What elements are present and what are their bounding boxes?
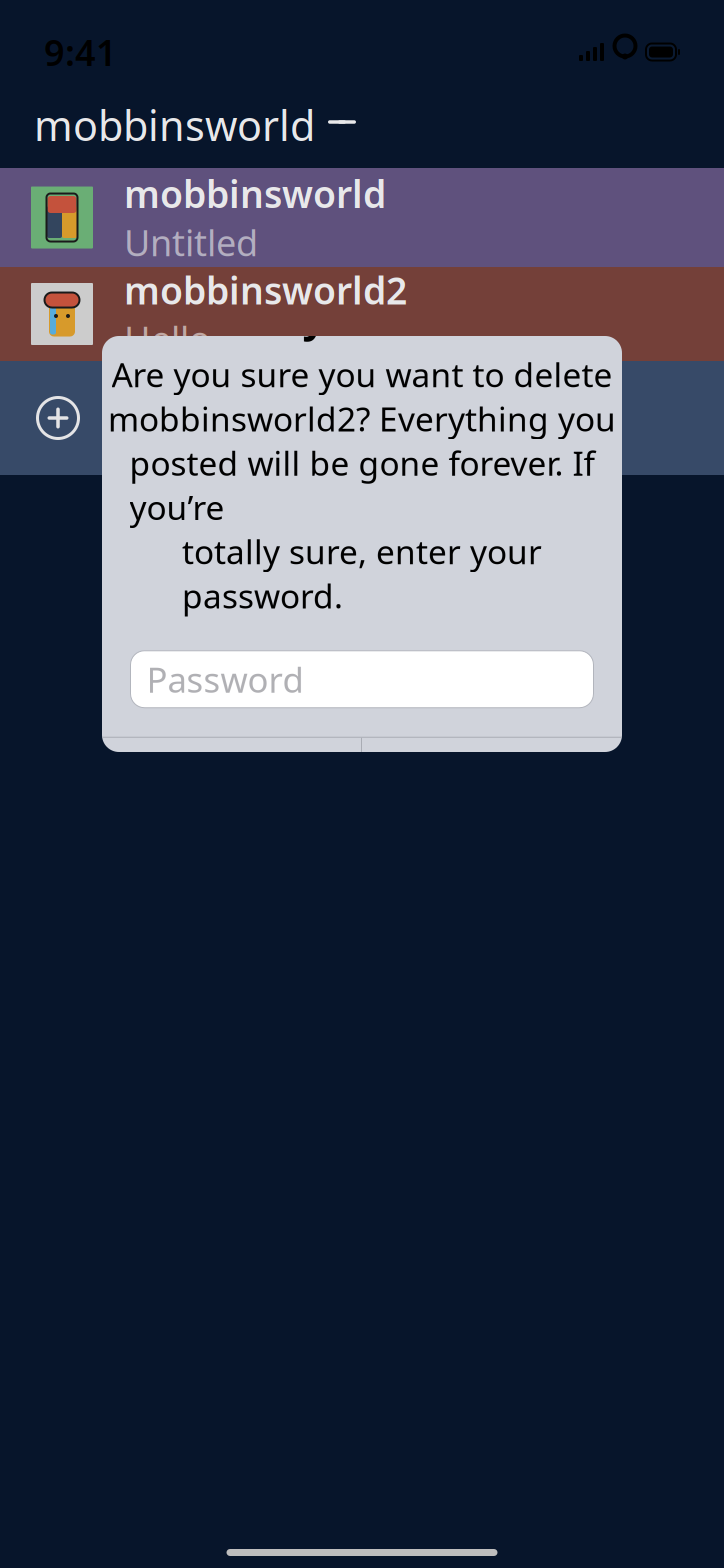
staticText: mobbinsworld2 — [124, 265, 407, 315]
button[interactable]: Nevermind — [102, 738, 361, 825]
button[interactable]: mobbinsworld — [0, 168, 724, 267]
staticText: Hey. Whoa. — [246, 288, 477, 343]
staticText: mobbinsworld2? Everything you — [108, 396, 616, 441]
staticText: 9:41 — [44, 28, 117, 76]
staticText: Untitled — [124, 218, 258, 266]
staticText: Hello — [124, 315, 211, 363]
staticText: posted will be gone forever. If you’re — [129, 441, 594, 529]
staticText: mobbinsworld — [124, 169, 386, 218]
staticText: mobbinsworld — [34, 98, 315, 152]
staticText: Are you sure you want to delete — [111, 352, 612, 396]
button[interactable]: mobbinsworld — [0, 82, 724, 168]
button[interactable]: mobbinsworld2 — [0, 267, 724, 361]
button[interactable]: Delete — [362, 738, 622, 825]
staticText: totally sure, enter your password. — [182, 529, 542, 618]
button[interactable]: Add account — [0, 361, 724, 475]
staticText: Password — [146, 656, 303, 702]
